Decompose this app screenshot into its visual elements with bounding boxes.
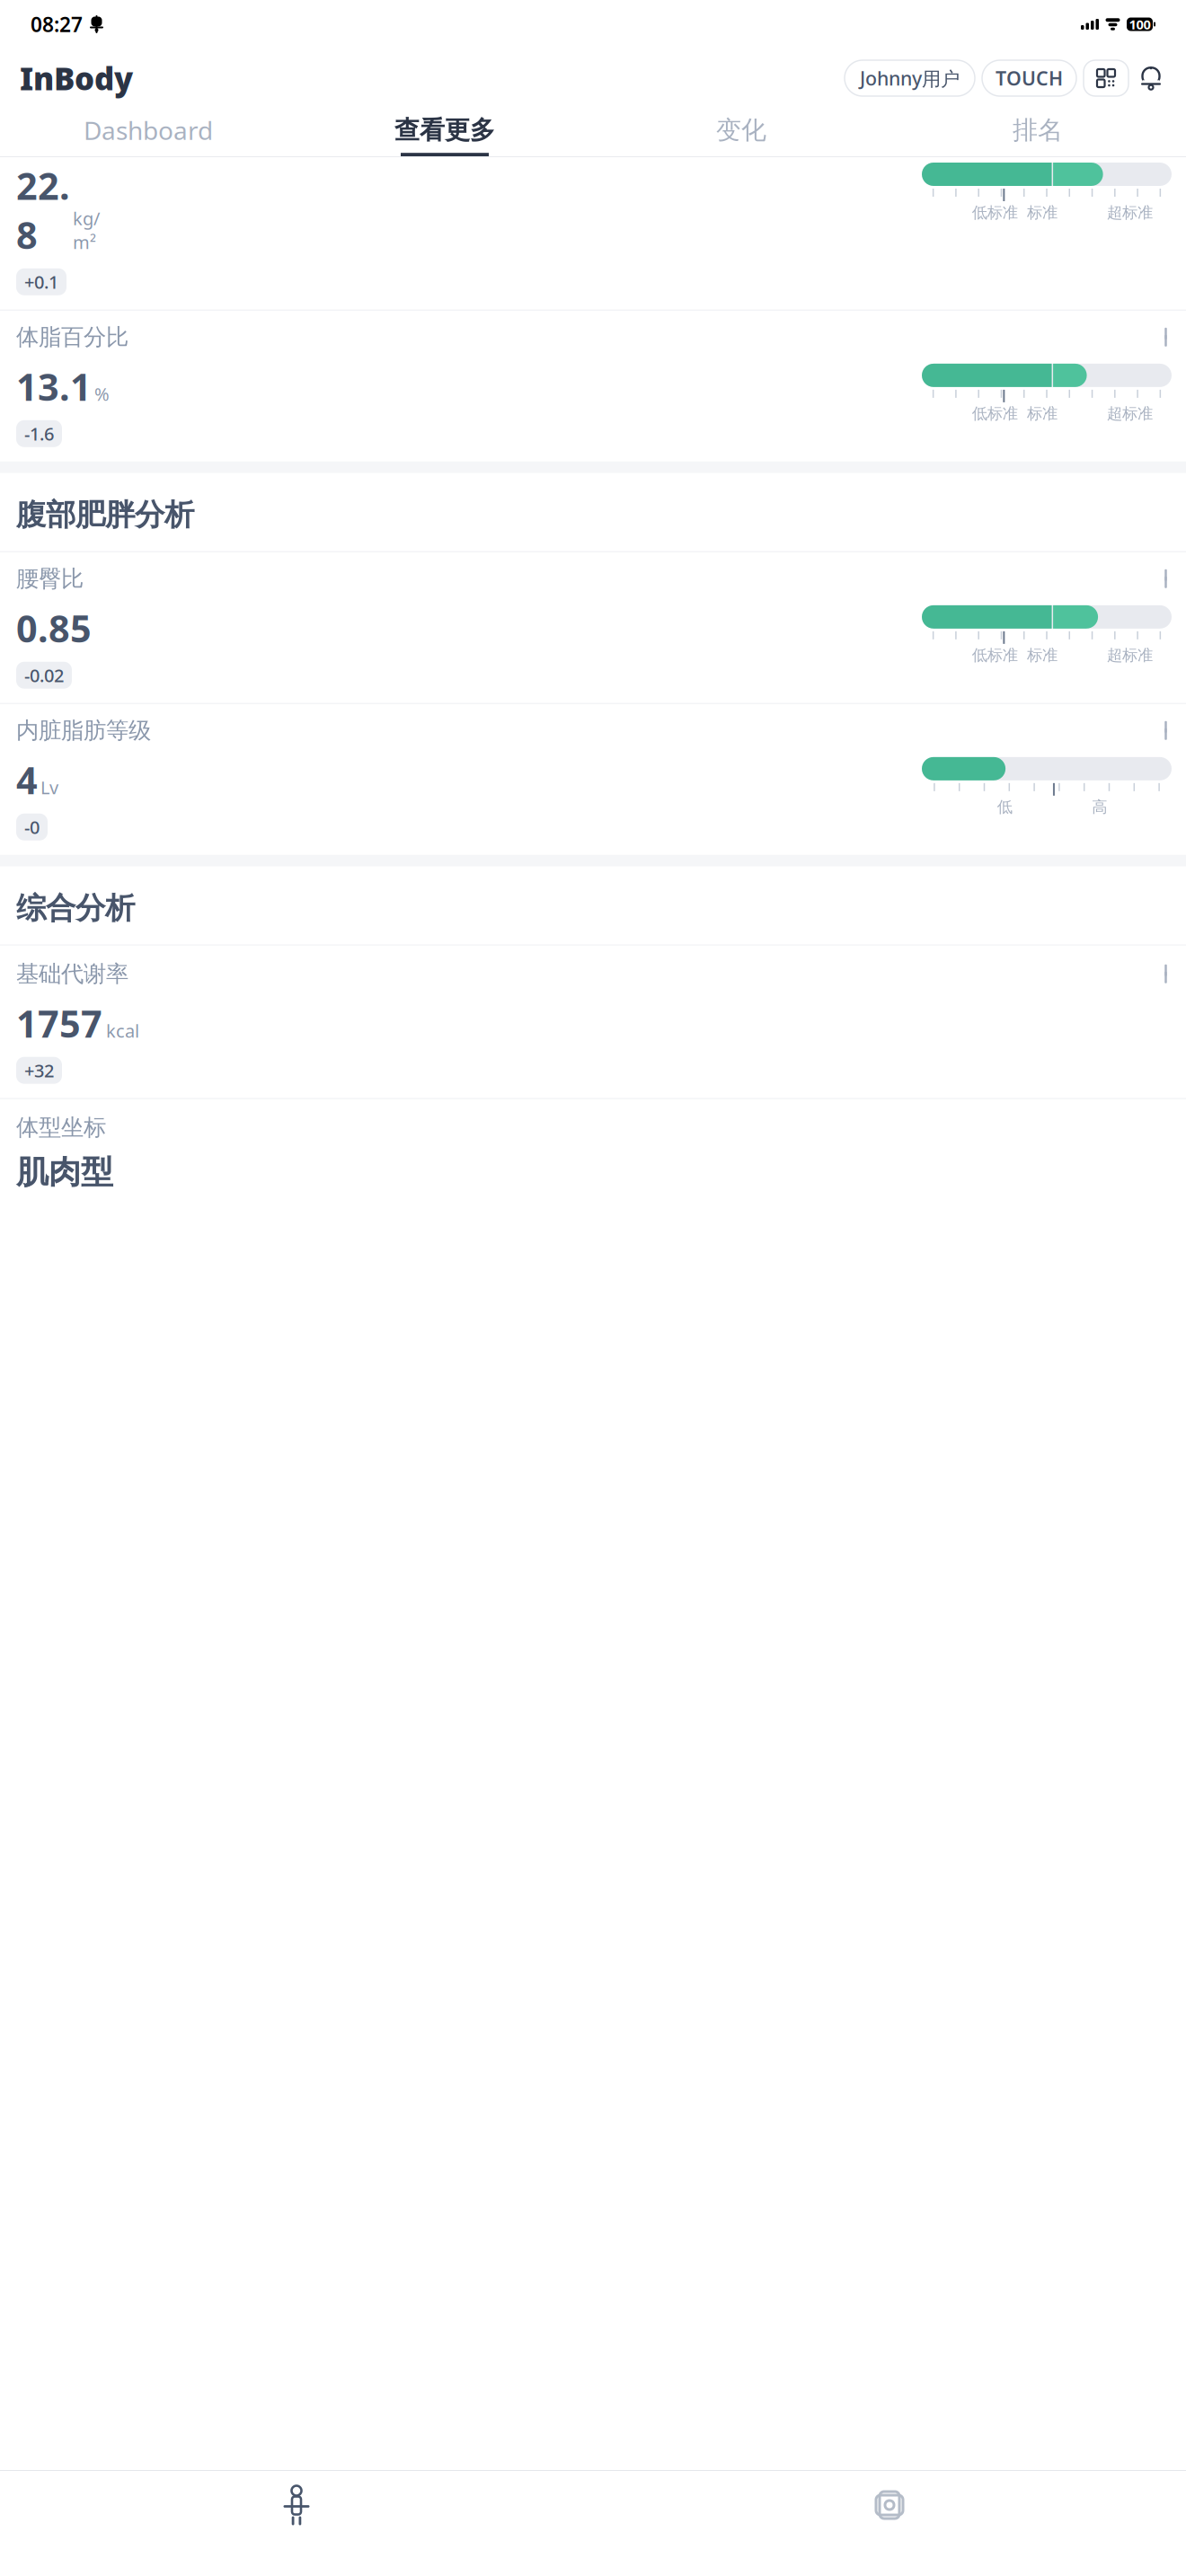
button[interactable]: 22.8	[0, 157, 1186, 310]
staticText: 低标准	[972, 646, 1018, 665]
staticText: 低标准	[972, 404, 1018, 423]
staticText: -0	[24, 815, 40, 839]
staticText: 标准	[1027, 203, 1058, 222]
button[interactable]: 体型坐标	[0, 1099, 1186, 1212]
button[interactable]: TOUCH	[982, 60, 1076, 96]
staticText: 基础代谢率	[16, 960, 128, 988]
staticText: 标准	[1027, 404, 1058, 423]
staticText: +32	[24, 1058, 54, 1082]
button[interactable]: Settings	[593, 2480, 1186, 2530]
staticText: 低	[997, 797, 1012, 817]
staticText: 1757	[16, 999, 102, 1048]
staticText: 超标准	[1107, 404, 1153, 423]
button[interactable]: Body composition	[0, 2480, 593, 2530]
staticText: -0.02	[24, 663, 64, 687]
staticText: +0.1	[24, 270, 58, 294]
staticText: 综合分析	[16, 890, 135, 927]
staticText: 变化	[716, 115, 766, 146]
staticText: Dashboard	[84, 114, 213, 147]
staticText: 4	[16, 755, 38, 805]
staticText: 低标准	[972, 203, 1018, 222]
staticText: 体型坐标	[16, 1113, 106, 1141]
staticText: 超标准	[1107, 203, 1153, 222]
button[interactable]: Notifications	[1136, 60, 1166, 96]
staticText: 0.85	[16, 603, 92, 653]
staticText: %	[94, 382, 110, 406]
staticText: kg/m²	[73, 206, 100, 254]
staticText: 查看更多	[394, 115, 495, 146]
staticText: 标准	[1027, 646, 1058, 665]
staticText: kcal	[106, 1019, 139, 1043]
button[interactable]: 腰臀比	[0, 552, 1186, 703]
staticText: 13.1	[16, 362, 92, 411]
staticText: 高	[1092, 797, 1107, 817]
button[interactable]: 查看更多	[296, 108, 593, 156]
staticText: InBody	[20, 57, 133, 99]
button[interactable]: 体脂百分比	[0, 311, 1186, 461]
button[interactable]: 排名	[889, 108, 1186, 156]
staticText: 肌肉型	[16, 1152, 113, 1192]
staticText: Lv	[40, 775, 58, 799]
staticText: 内脏脂肪等级	[16, 716, 151, 744]
staticText: 腰臀比	[16, 565, 84, 593]
staticText: TOUCH	[996, 65, 1063, 91]
staticText: 22.8	[16, 161, 70, 259]
staticText: Johnny用户	[860, 65, 960, 91]
button[interactable]: 内脏脂肪等级	[0, 704, 1186, 855]
staticText: -1.6	[24, 422, 54, 446]
button[interactable]: Johnny用户	[845, 60, 975, 96]
button[interactable]: 基础代谢率	[0, 946, 1186, 1098]
button[interactable]: Dashboard	[0, 108, 296, 156]
staticText: 超标准	[1107, 646, 1153, 665]
staticText: 100	[1129, 16, 1151, 33]
button[interactable]: 变化	[593, 108, 889, 156]
staticText: 腹部肥胖分析	[16, 497, 194, 533]
staticText: 排名	[1013, 115, 1063, 146]
staticText: 体脂百分比	[16, 323, 128, 351]
staticText: 08:27	[31, 11, 83, 38]
button[interactable]: Scan QR code	[1084, 60, 1128, 96]
